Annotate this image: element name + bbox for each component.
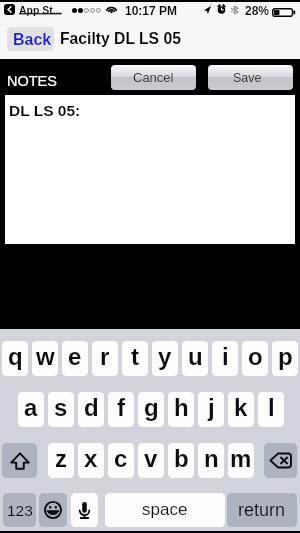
button[interactable]: w	[32, 341, 58, 376]
staticText: l	[268, 394, 275, 421]
button[interactable]: l	[258, 392, 284, 427]
button[interactable]: q	[2, 341, 28, 376]
staticText: Back	[13, 31, 52, 49]
staticText: t	[131, 343, 139, 370]
button[interactable]: f	[108, 392, 134, 427]
staticText: space	[142, 500, 188, 519]
staticText: o	[248, 343, 263, 370]
staticText: NOTES	[7, 73, 57, 89]
button[interactable]: Emoji keyboard	[39, 493, 67, 527]
staticText: w	[36, 343, 55, 370]
button[interactable]: z	[48, 443, 74, 478]
staticText: z	[55, 445, 67, 472]
button[interactable]: s	[48, 392, 74, 427]
button[interactable]: Back	[7, 27, 54, 51]
button[interactable]: h	[168, 392, 194, 427]
staticText: x	[84, 445, 98, 472]
staticText: v	[144, 445, 158, 472]
button[interactable]: e	[62, 341, 88, 376]
staticText: y	[158, 343, 172, 370]
staticText: p	[278, 343, 293, 370]
staticText: j	[208, 394, 215, 421]
button[interactable]: 123	[3, 493, 36, 527]
staticText: Facilty DL LS 05	[60, 30, 181, 48]
button[interactable]: r	[92, 341, 118, 376]
button[interactable]: Backspace	[264, 443, 297, 478]
button[interactable]: v	[138, 443, 164, 478]
button[interactable]: Back to App Store	[4, 4, 15, 15]
staticText: 10:17 PM	[125, 4, 178, 17]
button[interactable]: m	[228, 443, 254, 478]
staticText: Cancel	[133, 70, 174, 85]
staticText: d	[84, 394, 99, 421]
staticText: n	[204, 445, 219, 472]
staticText: r	[100, 343, 110, 370]
button[interactable]: Cancel	[111, 65, 196, 90]
button[interactable]: p	[272, 341, 298, 376]
staticText: DL LS 05:	[9, 102, 81, 119]
button[interactable]: b	[168, 443, 194, 478]
button[interactable]: y	[152, 341, 178, 376]
staticText: return	[238, 500, 286, 520]
staticText: e	[68, 343, 82, 370]
staticText: g	[144, 394, 159, 421]
button[interactable]: k	[228, 392, 254, 427]
staticText: s	[54, 394, 68, 421]
button[interactable]: o	[242, 341, 268, 376]
staticText: f	[117, 394, 125, 421]
staticText: c	[114, 445, 128, 472]
staticText: i	[222, 343, 229, 370]
button[interactable]: u	[182, 341, 208, 376]
staticText: u	[188, 343, 203, 370]
button[interactable]: a	[18, 392, 44, 427]
button[interactable]: d	[78, 392, 104, 427]
button[interactable]: c	[108, 443, 134, 478]
button[interactable]: return	[227, 493, 297, 527]
button[interactable]: x	[78, 443, 104, 478]
button[interactable]: g	[138, 392, 164, 427]
staticText: h	[174, 394, 189, 421]
button[interactable]: j	[198, 392, 224, 427]
staticText: m	[230, 445, 252, 472]
button[interactable]: Shift	[2, 443, 37, 478]
staticText: q	[8, 343, 23, 370]
staticText: b	[174, 445, 189, 472]
button[interactable]: Dictation	[71, 493, 98, 527]
staticText: App St...	[19, 4, 62, 16]
staticText: k	[234, 394, 248, 421]
staticText: Save	[233, 71, 262, 85]
staticText: a	[24, 394, 38, 421]
button[interactable]: t	[122, 341, 148, 376]
button[interactable]: space	[105, 493, 225, 527]
button[interactable]: DL LS 05:	[5, 95, 295, 244]
button[interactable]: n	[198, 443, 224, 478]
staticText: 123	[7, 502, 33, 519]
button[interactable]: i	[212, 341, 238, 376]
staticText: 28%	[245, 4, 270, 17]
button[interactable]: Save	[208, 65, 293, 90]
